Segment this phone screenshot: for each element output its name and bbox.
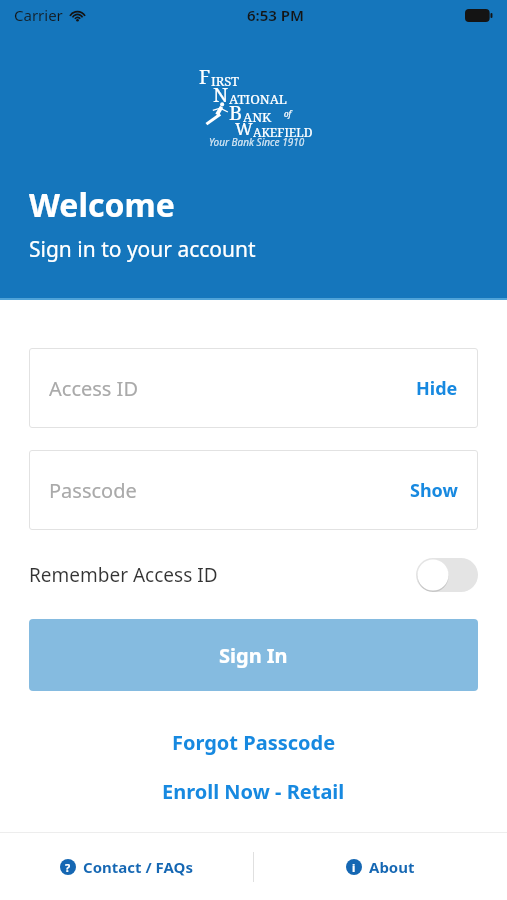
staticText: B	[229, 99, 243, 126]
button[interactable]: Hide	[416, 376, 458, 401]
button[interactable]: Show	[410, 478, 458, 503]
staticText: Sign In	[219, 642, 288, 669]
button[interactable]: Forgot Passcode	[0, 729, 507, 756]
staticText: i	[352, 860, 356, 875]
staticText: N	[213, 81, 229, 108]
staticText: Contact / FAQs	[83, 857, 193, 877]
staticText: Forgot Passcode	[172, 729, 336, 756]
staticText: Your Bank Since 1910	[209, 135, 305, 149]
staticText: Welcome	[29, 183, 175, 227]
button[interactable]: Sign In	[29, 619, 478, 691]
button[interactable]: Passcode	[49, 450, 458, 530]
button[interactable]: Remember Access ID	[29, 552, 478, 598]
staticText: Enroll Now - Retail	[162, 778, 345, 805]
staticText: W	[235, 117, 253, 140]
staticText: Passcode	[49, 477, 137, 504]
staticText: Access ID	[49, 375, 138, 402]
staticText: AKEFIELD	[253, 124, 313, 140]
staticText: About	[369, 857, 415, 877]
button[interactable]: Access ID	[49, 348, 458, 428]
staticText: Hide	[416, 376, 458, 401]
staticText: Carrier	[14, 5, 63, 25]
button[interactable]: ?	[0, 833, 253, 900]
staticText: ?	[65, 860, 71, 875]
staticText: IRST	[211, 72, 240, 90]
staticText: ATIONAL	[229, 90, 287, 108]
button[interactable]: Remember Access ID toggle	[416, 558, 478, 592]
staticText: F	[199, 64, 211, 90]
staticText: 6:53 PM	[247, 5, 304, 25]
staticText: Sign in to your account	[29, 235, 256, 264]
staticText: ANK	[243, 108, 272, 126]
button[interactable]: Enroll Now - Retail	[0, 778, 507, 805]
staticText: Remember Access ID	[29, 562, 218, 588]
staticText: of	[284, 108, 292, 119]
staticText: Show	[410, 478, 458, 503]
button[interactable]: i	[254, 833, 507, 900]
